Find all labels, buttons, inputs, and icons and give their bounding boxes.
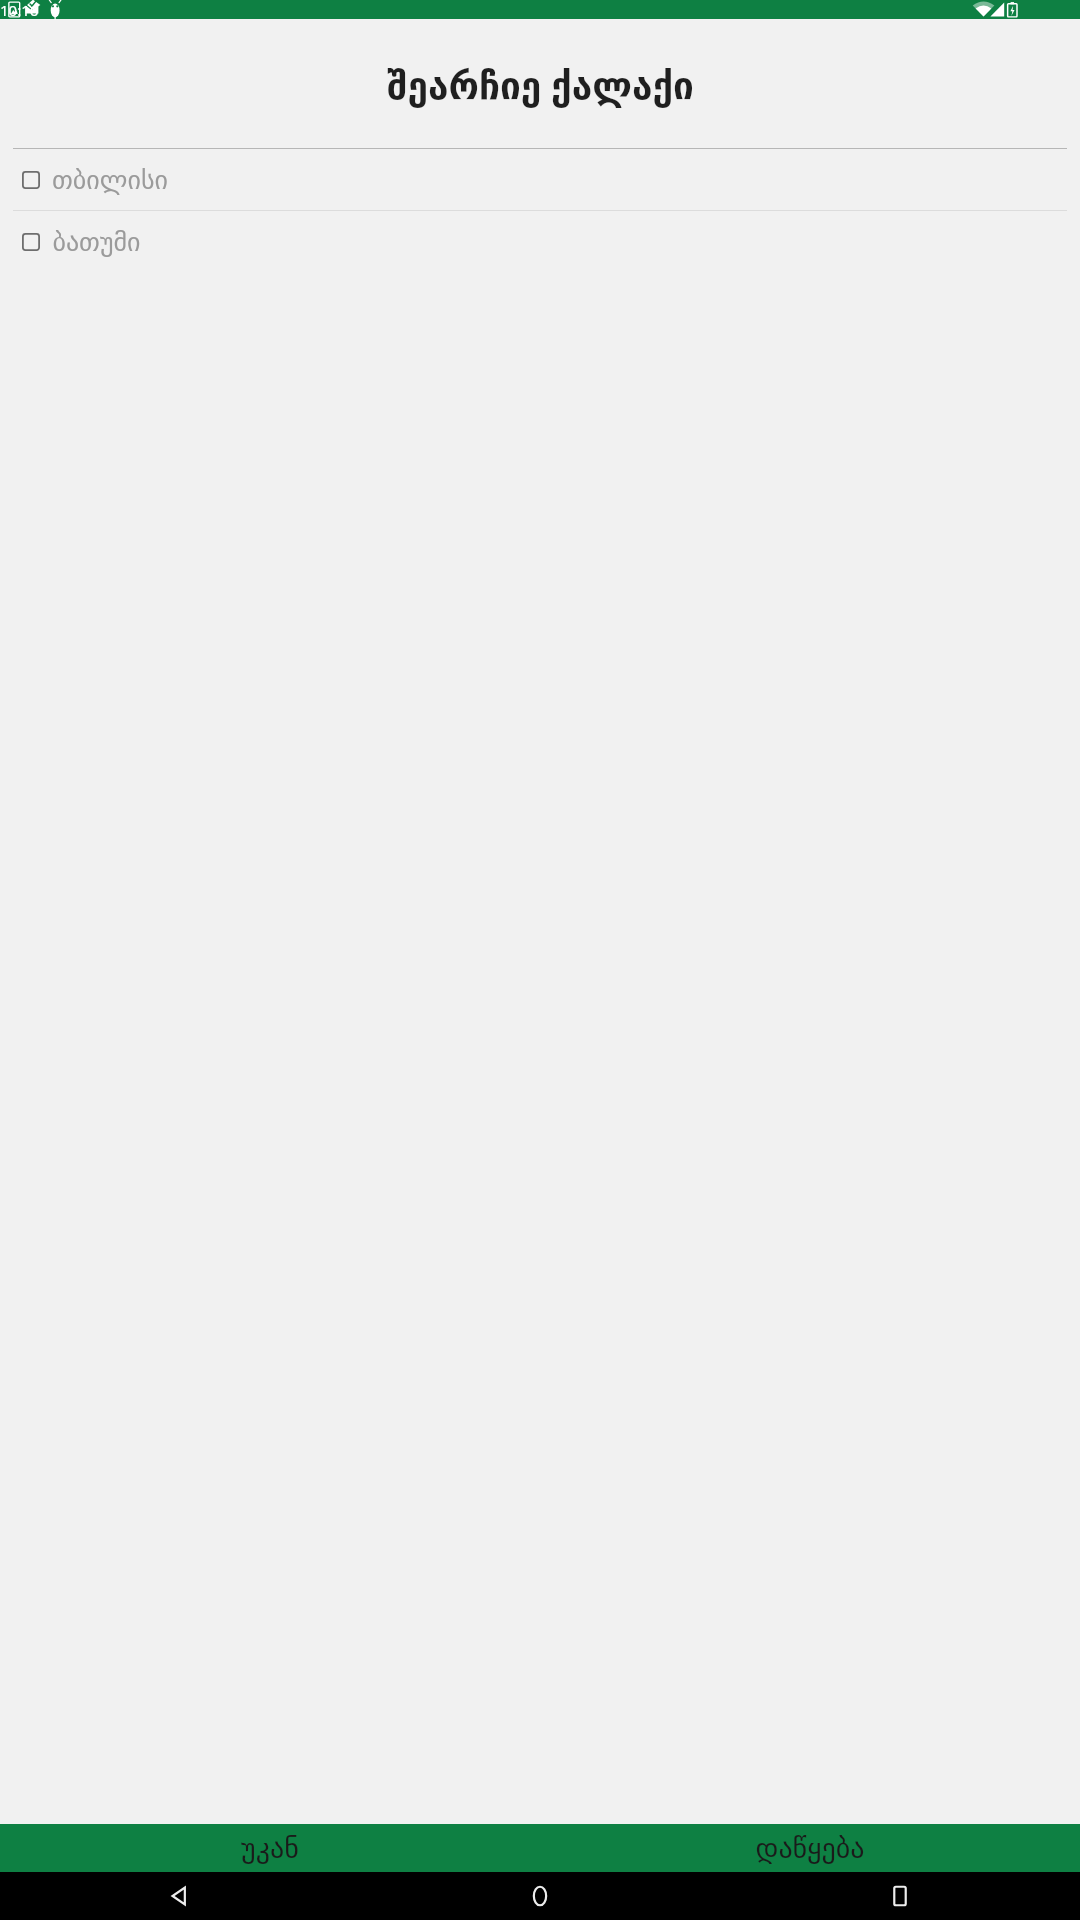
staticText: უკან [241, 1832, 299, 1865]
button[interactable]: დაწყება [540, 1824, 1080, 1872]
staticText: შეარჩიე ქალაქი [387, 59, 694, 109]
button[interactable]: უკან [0, 1824, 540, 1872]
staticText: ბათუმი [52, 227, 141, 257]
button[interactable]: ბათუმი [0, 211, 1080, 272]
staticText: თბილისი [52, 165, 168, 195]
button[interactable]: Home [360, 1872, 720, 1920]
button[interactable]: თბილისი [0, 149, 1080, 210]
staticText: 10:16 [0, 0, 39, 19]
button[interactable]: Back [0, 1872, 360, 1920]
staticText: დაწყება [755, 1832, 865, 1865]
button[interactable]: Recent apps [720, 1872, 1080, 1920]
